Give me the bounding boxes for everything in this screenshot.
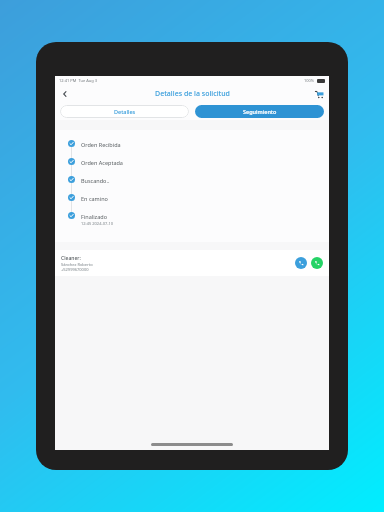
button[interactable]: Call <box>295 257 307 269</box>
staticText: Detalles de la solicitud <box>155 89 230 99</box>
staticText: Orden Aceptada <box>81 159 123 166</box>
staticText: 12:41 PM Tue Aug 3 <box>59 78 97 83</box>
button[interactable]: Seguimiento <box>195 105 324 118</box>
button[interactable]: Orden Aceptada <box>65 158 329 176</box>
button[interactable]: Cart <box>312 87 326 101</box>
staticText: +52999670000 <box>61 267 89 272</box>
button[interactable]: Finalizado <box>65 212 329 230</box>
staticText: En camino <box>81 195 108 202</box>
button[interactable]: Back <box>58 87 72 101</box>
button[interactable]: Buscando.. <box>65 176 329 194</box>
staticText: Orden Recibida <box>81 141 121 148</box>
staticText: Buscando.. <box>81 177 110 184</box>
button[interactable]: Detalles <box>60 105 189 118</box>
button[interactable]: En camino <box>65 194 329 212</box>
staticText: 100% <box>304 78 315 83</box>
staticText: Seguimiento <box>243 108 277 115</box>
staticText: Finalizado <box>81 213 107 220</box>
staticText: Sánchez Roberto <box>61 262 93 267</box>
staticText: Cleaner: <box>61 255 81 262</box>
staticText: 12:45 2024-07-10 <box>81 221 114 226</box>
button[interactable]: WhatsApp <box>311 257 323 269</box>
staticText: Detalles <box>114 108 136 115</box>
button[interactable]: Orden Recibida <box>65 140 329 158</box>
